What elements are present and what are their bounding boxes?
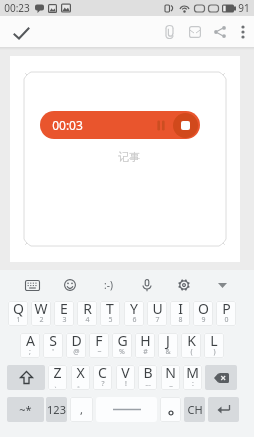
staticText: 5	[108, 315, 113, 325]
staticText: ~	[97, 347, 102, 357]
staticText: C	[98, 365, 107, 382]
staticText: S	[49, 333, 57, 350]
button[interactable]	[207, 16, 232, 47]
staticText: ?	[101, 379, 105, 389]
staticText: 0	[224, 315, 229, 325]
staticText: ...	[145, 379, 151, 389]
staticText: 00:23	[4, 1, 30, 15]
staticText: W	[34, 301, 48, 318]
button[interactable]: ,	[70, 397, 93, 422]
button[interactable]	[172, 272, 196, 298]
staticText: )	[213, 347, 216, 357]
button[interactable]	[20, 272, 44, 298]
staticText: ~*	[19, 402, 32, 417]
button[interactable]	[205, 365, 237, 390]
button[interactable]: U	[147, 301, 167, 326]
staticText: X	[76, 365, 85, 382]
button[interactable]: :-)	[95, 272, 121, 298]
staticText: 4	[85, 315, 90, 325]
staticText: 9	[201, 315, 206, 325]
staticText: V	[121, 365, 130, 382]
button[interactable]: 00:03	[40, 111, 200, 139]
staticText: '	[52, 347, 54, 357]
button[interactable]: Y	[124, 301, 144, 326]
button[interactable]	[208, 397, 239, 422]
staticText: L	[210, 333, 218, 350]
staticText: CH	[187, 402, 203, 417]
staticText: G	[117, 333, 128, 350]
button[interactable]	[96, 397, 157, 422]
button[interactable]	[173, 113, 198, 138]
button[interactable]: I	[170, 301, 190, 326]
button[interactable]: S	[43, 333, 63, 358]
staticText: A	[26, 333, 35, 350]
staticText: 8	[178, 315, 183, 325]
staticText: %	[119, 347, 125, 357]
staticText: &	[165, 347, 171, 357]
staticText: O	[198, 301, 209, 318]
button[interactable]: M	[183, 365, 202, 390]
button[interactable]: F	[89, 333, 109, 358]
button[interactable]: K	[181, 333, 201, 358]
button[interactable]: E	[54, 301, 74, 326]
button[interactable]: H	[135, 333, 155, 358]
button[interactable]: L	[204, 333, 224, 358]
button[interactable]	[210, 272, 234, 298]
staticText: 7	[155, 315, 160, 325]
button[interactable]: ~*	[7, 397, 44, 422]
button[interactable]: W	[31, 301, 51, 326]
button[interactable]: A	[20, 333, 40, 358]
staticText: #	[143, 347, 148, 357]
staticText: 1	[16, 315, 21, 325]
staticText: K	[187, 333, 196, 350]
button[interactable]	[157, 16, 182, 47]
staticText: 91	[238, 1, 250, 15]
button[interactable]: O	[193, 301, 213, 326]
staticText: 。	[77, 380, 84, 389]
staticText: (	[190, 347, 193, 357]
staticText: B	[143, 365, 153, 382]
staticText: H	[140, 333, 151, 350]
button[interactable]	[7, 365, 45, 390]
staticText: R	[83, 301, 92, 318]
staticText: D	[71, 333, 82, 350]
button[interactable]: 123	[46, 397, 67, 422]
button[interactable]: J	[158, 333, 178, 358]
staticText: E	[60, 301, 68, 318]
staticText: M	[186, 365, 199, 382]
button[interactable]: Z	[48, 365, 67, 390]
button[interactable]: T	[100, 301, 120, 326]
staticText: 2	[39, 315, 44, 325]
staticText: 123	[47, 402, 66, 417]
button[interactable]	[135, 272, 159, 298]
button[interactable]: D	[66, 333, 86, 358]
button[interactable]	[160, 397, 181, 422]
button[interactable]	[58, 272, 82, 298]
staticText: !	[125, 379, 127, 389]
button[interactable]: C	[93, 365, 112, 390]
button[interactable]: P	[216, 301, 236, 326]
button[interactable]	[232, 16, 254, 47]
button[interactable]: X	[71, 365, 90, 390]
staticText: ;	[29, 347, 31, 357]
button[interactable]	[0, 16, 44, 47]
button[interactable]: Q	[8, 301, 28, 326]
staticText: J	[166, 333, 170, 350]
staticText: @	[73, 347, 80, 357]
button[interactable]: N	[161, 365, 180, 390]
staticText: P	[222, 301, 231, 318]
button[interactable]: G	[112, 333, 132, 358]
button[interactable]: V	[116, 365, 135, 390]
staticText: 3	[62, 315, 67, 325]
staticText: Z	[53, 365, 62, 382]
staticText: :-)	[104, 278, 113, 292]
button[interactable]: R	[77, 301, 97, 326]
button[interactable]: B	[138, 365, 157, 390]
staticText: 、	[54, 380, 61, 389]
button[interactable]: CH	[184, 397, 205, 422]
button[interactable]	[182, 16, 207, 47]
staticText: T	[106, 301, 114, 318]
staticText: 6	[132, 315, 137, 325]
staticText: _	[169, 379, 173, 389]
staticText: :	[192, 379, 194, 389]
